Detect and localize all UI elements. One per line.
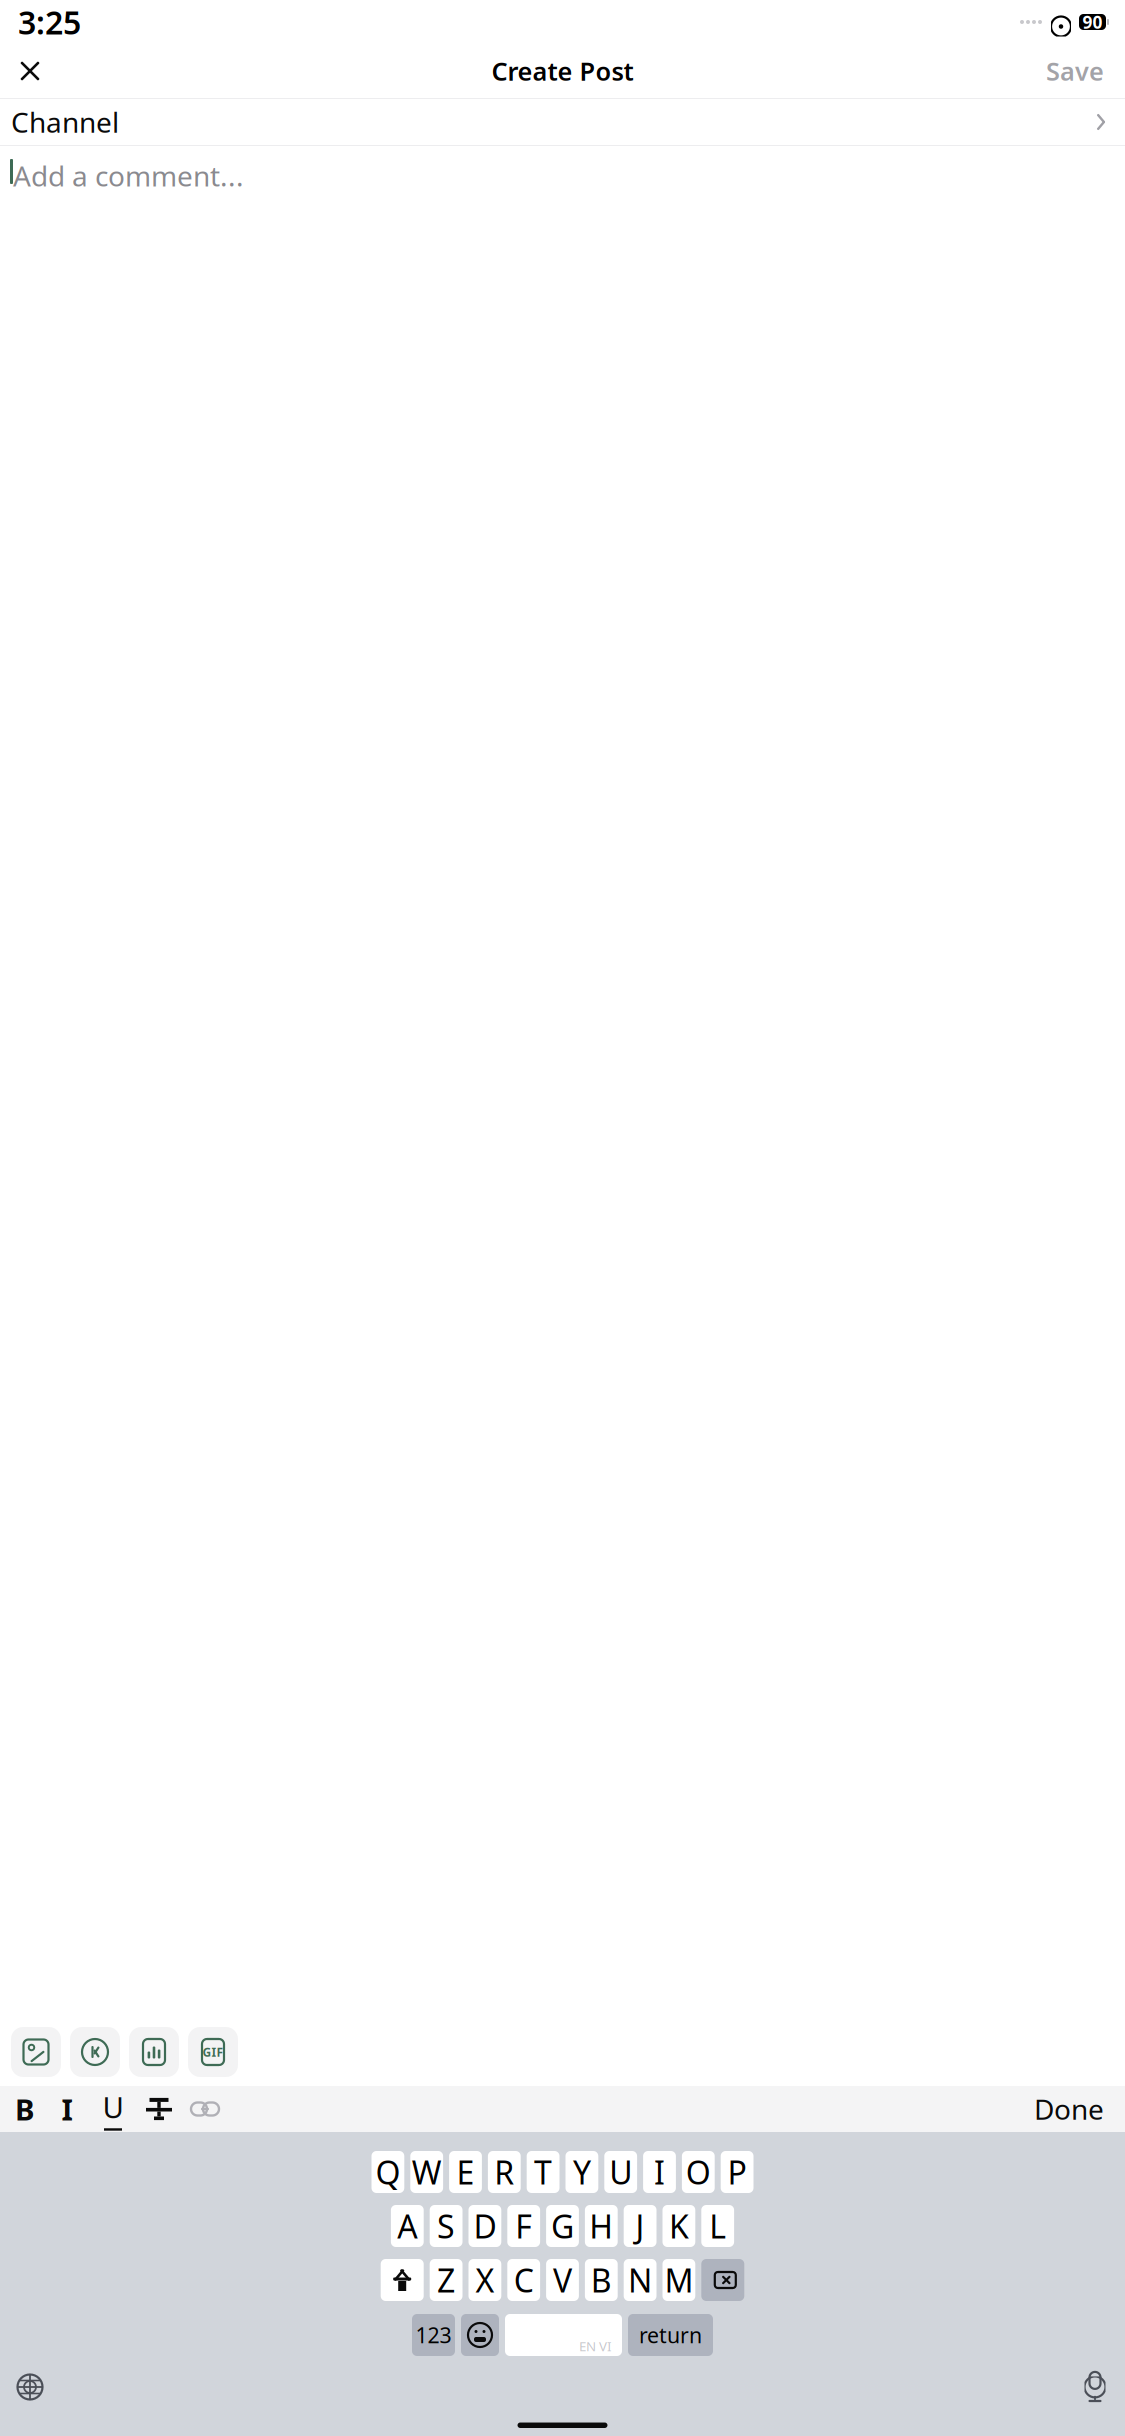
button[interactable]: C	[507, 2259, 540, 2301]
staticText: B	[591, 2259, 612, 2301]
staticText: P	[728, 2151, 747, 2193]
button[interactable]: space	[505, 2314, 622, 2356]
button[interactable]: U	[604, 2151, 637, 2193]
staticText: 123	[415, 2321, 451, 2349]
staticText: Save	[1046, 54, 1104, 88]
button[interactable]: A	[391, 2205, 424, 2247]
staticText: N	[628, 2259, 652, 2301]
staticText: A	[397, 2205, 417, 2247]
staticText: return	[639, 2321, 702, 2349]
staticText: I	[654, 2151, 665, 2193]
button[interactable]: Channel	[0, 99, 1125, 145]
staticText: M	[664, 2259, 693, 2301]
button[interactable]: L	[701, 2205, 734, 2247]
staticText: D	[473, 2205, 496, 2247]
button[interactable]: U	[90, 2086, 136, 2132]
staticText: I	[61, 2089, 72, 2128]
staticText: J	[636, 2205, 645, 2247]
button[interactable]: R	[488, 2151, 521, 2193]
button[interactable]: B	[6, 2086, 44, 2132]
button[interactable]: Y	[565, 2151, 598, 2193]
staticText: V	[553, 2259, 572, 2301]
button[interactable]: I	[44, 2086, 90, 2132]
staticText: H	[589, 2205, 613, 2247]
button[interactable]: K	[662, 2205, 695, 2247]
button[interactable]: Add photo	[11, 2027, 61, 2077]
staticText: Channel	[11, 103, 119, 141]
staticText: Y	[573, 2151, 591, 2193]
staticText: O	[686, 2151, 711, 2193]
staticText: R	[494, 2151, 514, 2193]
staticText: T	[534, 2151, 552, 2193]
button[interactable]: W	[410, 2151, 443, 2193]
button[interactable]: Next keyboard	[8, 2365, 52, 2409]
staticText: L	[709, 2205, 726, 2247]
button[interactable]: M	[662, 2259, 695, 2301]
button[interactable]: H	[585, 2205, 618, 2247]
staticText: C	[514, 2259, 534, 2301]
staticText: Q	[375, 2151, 400, 2193]
button[interactable]: X	[468, 2259, 501, 2301]
staticText: G	[551, 2205, 574, 2247]
button[interactable]: Strikethrough	[136, 2086, 182, 2132]
button[interactable]: Add poll	[129, 2027, 179, 2077]
button[interactable]: Shift	[381, 2259, 424, 2301]
staticText: F	[515, 2205, 532, 2247]
button[interactable]: J	[624, 2205, 656, 2247]
button[interactable]: Save	[1042, 49, 1108, 93]
button[interactable]: Close	[8, 49, 52, 93]
staticText: U	[102, 2087, 123, 2126]
button[interactable]: 123	[412, 2314, 455, 2356]
button[interactable]: Add GIF	[188, 2027, 238, 2077]
staticText: 90	[1082, 10, 1102, 33]
staticText: S	[437, 2205, 455, 2247]
staticText: W	[412, 2151, 442, 2193]
button[interactable]: return	[628, 2314, 713, 2356]
button[interactable]: D	[468, 2205, 501, 2247]
button[interactable]: Add video	[70, 2027, 120, 2077]
button[interactable]: V	[546, 2259, 579, 2301]
staticText: B	[15, 2089, 35, 2128]
button[interactable]: G	[546, 2205, 579, 2247]
staticText: Z	[437, 2259, 455, 2301]
staticText: U	[609, 2151, 632, 2193]
button[interactable]: F	[507, 2205, 540, 2247]
staticText: GIF	[202, 2044, 223, 2060]
button[interactable]: T	[527, 2151, 559, 2193]
button[interactable]: S	[430, 2205, 462, 2247]
button[interactable]: Q	[371, 2151, 404, 2193]
button[interactable]: P	[721, 2151, 753, 2193]
button[interactable]: Emoji	[461, 2314, 499, 2356]
button[interactable]: N	[624, 2259, 656, 2301]
button[interactable]: I	[643, 2151, 676, 2193]
staticText: Create Post	[491, 54, 633, 88]
button[interactable]: O	[682, 2151, 715, 2193]
staticText: Done	[1034, 2090, 1104, 2128]
staticText: E	[456, 2151, 474, 2193]
button[interactable]: Insert link	[182, 2086, 228, 2132]
staticText: K	[669, 2205, 689, 2247]
button[interactable]: Z	[430, 2259, 462, 2301]
button[interactable]: B	[585, 2259, 618, 2301]
button[interactable]: Delete	[701, 2259, 744, 2301]
button[interactable]: Done	[1030, 2086, 1108, 2132]
staticText: Add a comment...	[13, 157, 244, 194]
button[interactable]: E	[449, 2151, 482, 2193]
staticText: X	[475, 2259, 494, 2301]
staticText: EN VI	[579, 2337, 612, 2355]
staticText: 3:25	[18, 1, 81, 43]
button[interactable]: Dictation	[1073, 2365, 1117, 2409]
